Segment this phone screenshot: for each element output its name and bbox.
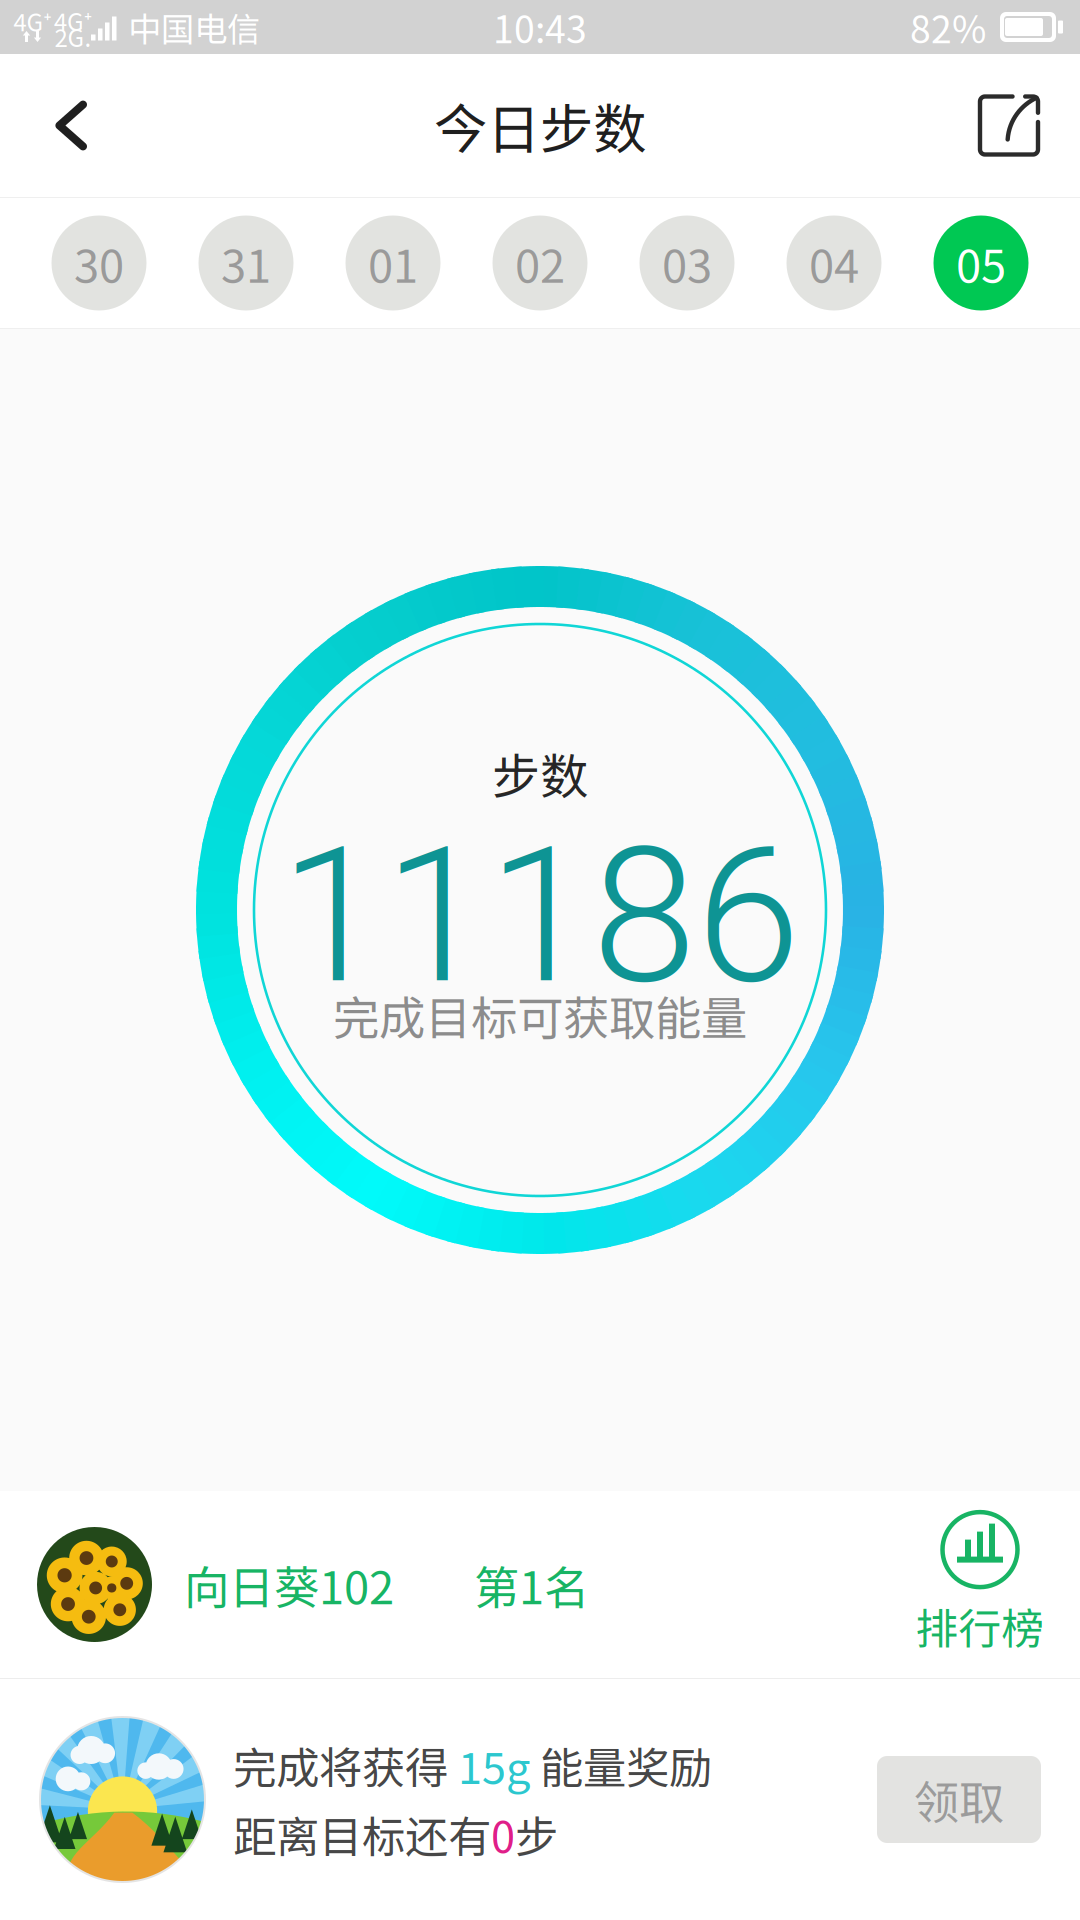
- staticText: 02: [515, 230, 565, 296]
- staticText: 31: [221, 230, 271, 296]
- staticText: 30: [74, 230, 124, 296]
- staticText: 11186: [280, 806, 800, 1026]
- button[interactable]: Back: [0, 54, 130, 197]
- button[interactable]: 02: [466, 196, 613, 330]
- button[interactable]: 01: [319, 196, 466, 330]
- staticText: 第1名: [474, 1552, 589, 1617]
- staticText: 完成目标可获取能量: [333, 981, 747, 1048]
- staticText: 4G⁺: [54, 3, 92, 38]
- staticText: 距离目标还有: [233, 1803, 491, 1865]
- button[interactable]: 04: [760, 196, 907, 330]
- staticText: 01: [368, 230, 418, 296]
- staticText: 向日葵102: [184, 1552, 394, 1617]
- staticText: 步数: [492, 738, 588, 808]
- staticText: 排行榜: [915, 1595, 1044, 1657]
- staticText: 完成将获得: [233, 1734, 458, 1796]
- button[interactable]: 31: [172, 196, 319, 330]
- button[interactable]: Share: [954, 54, 1080, 197]
- staticText: 04: [809, 230, 859, 296]
- staticText: 能量奖励: [530, 1734, 712, 1796]
- staticText: 03: [662, 230, 712, 296]
- staticText: 领取: [914, 1767, 1004, 1832]
- button[interactable]: 向日葵102: [0, 1491, 1080, 1678]
- staticText: 15g: [458, 1734, 530, 1796]
- staticText: 2G.: [54, 19, 91, 54]
- staticText: 步: [515, 1803, 558, 1865]
- staticText: 0: [491, 1803, 515, 1865]
- staticText: 10:43: [493, 0, 587, 54]
- button[interactable]: 05: [907, 196, 1054, 330]
- button[interactable]: 30: [25, 196, 172, 330]
- staticText: 05: [956, 230, 1006, 296]
- staticText: 中国电信: [128, 3, 260, 51]
- button[interactable]: 03: [613, 196, 760, 330]
- staticText: 今日步数: [434, 87, 646, 164]
- button[interactable]: 领取: [877, 1756, 1041, 1843]
- staticText: 82%: [910, 0, 986, 54]
- staticText: 4G⁺: [13, 4, 51, 38]
